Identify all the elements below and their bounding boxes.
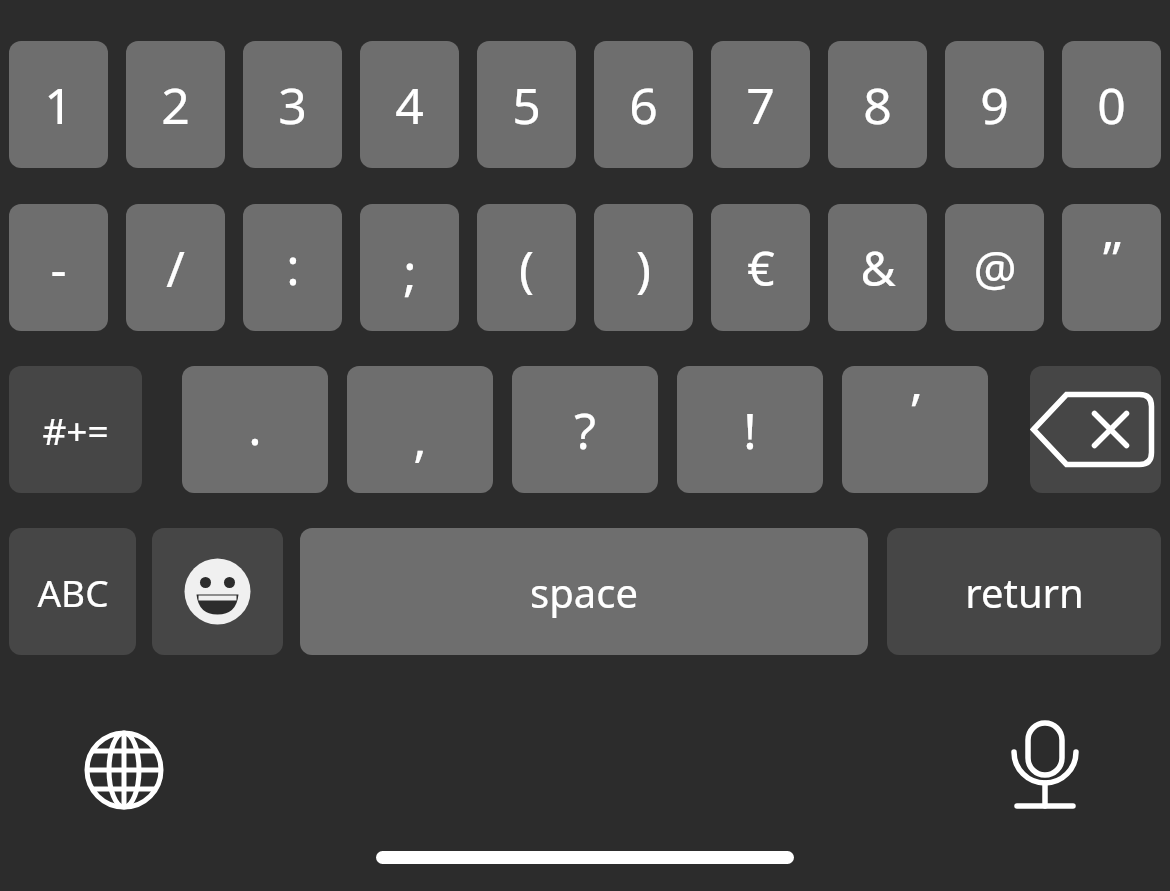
button[interactable]: 3 bbox=[243, 41, 342, 168]
staticText: space bbox=[530, 565, 638, 619]
button[interactable]: 9 bbox=[945, 41, 1044, 168]
button[interactable]: Change keyboard bbox=[74, 720, 174, 820]
button[interactable]: 1 bbox=[9, 41, 108, 168]
button[interactable]: , bbox=[347, 366, 493, 493]
staticText: 2 bbox=[161, 71, 190, 139]
staticText: 1 bbox=[44, 71, 73, 139]
button[interactable]: #+= bbox=[9, 366, 142, 493]
staticText: 9 bbox=[980, 71, 1009, 139]
staticText: 5 bbox=[512, 71, 541, 139]
button[interactable]: ” bbox=[1062, 204, 1161, 331]
button[interactable]: return bbox=[887, 528, 1161, 655]
staticText: / bbox=[166, 234, 185, 302]
staticText: ? bbox=[574, 396, 596, 464]
button[interactable]: 6 bbox=[594, 41, 693, 168]
button[interactable]: : bbox=[243, 204, 342, 331]
staticText: 8 bbox=[863, 71, 892, 139]
button[interactable]: 8 bbox=[828, 41, 927, 168]
staticText: 4 bbox=[395, 71, 424, 139]
button[interactable]: 4 bbox=[360, 41, 459, 168]
staticText: 0 bbox=[1097, 71, 1126, 139]
staticText: ” bbox=[1103, 224, 1121, 292]
staticText: € bbox=[747, 235, 775, 300]
button[interactable]: 0 bbox=[1062, 41, 1161, 168]
button[interactable]: - bbox=[9, 204, 108, 331]
staticText: ’ bbox=[911, 376, 920, 444]
button[interactable]: / bbox=[126, 204, 225, 331]
staticText: ( bbox=[519, 234, 534, 302]
staticText: ) bbox=[636, 234, 651, 302]
button[interactable]: & bbox=[828, 204, 927, 331]
staticText: #+= bbox=[42, 405, 109, 455]
staticText: 3 bbox=[278, 71, 307, 139]
staticText: & bbox=[860, 235, 896, 300]
staticText: 6 bbox=[629, 71, 658, 139]
staticText: ABC bbox=[37, 567, 109, 617]
button[interactable]: . bbox=[182, 366, 328, 493]
button[interactable]: € bbox=[711, 204, 810, 331]
staticText: @ bbox=[973, 235, 1017, 300]
button[interactable]: ? bbox=[512, 366, 658, 493]
button[interactable]: ) bbox=[594, 204, 693, 331]
button[interactable]: @ bbox=[945, 204, 1044, 331]
button[interactable]: Emoji bbox=[152, 528, 283, 655]
staticText: : bbox=[286, 232, 300, 300]
staticText: , bbox=[413, 404, 427, 472]
staticText: ! bbox=[743, 396, 757, 464]
button[interactable]: ! bbox=[677, 366, 823, 493]
button[interactable]: ( bbox=[477, 204, 576, 331]
staticText: . bbox=[248, 392, 262, 460]
staticText: - bbox=[50, 234, 67, 302]
button[interactable]: ; bbox=[360, 204, 459, 331]
button[interactable]: ’ bbox=[842, 366, 988, 493]
button[interactable]: Backspace bbox=[1030, 366, 1161, 493]
button[interactable]: 7 bbox=[711, 41, 810, 168]
staticText: ; bbox=[403, 238, 417, 306]
staticText: return bbox=[965, 565, 1084, 619]
button[interactable]: space bbox=[300, 528, 868, 655]
staticText: 7 bbox=[746, 71, 775, 139]
button[interactable]: 5 bbox=[477, 41, 576, 168]
button[interactable]: ABC bbox=[9, 528, 136, 655]
button[interactable]: Voice input bbox=[995, 718, 1095, 818]
button[interactable]: 2 bbox=[126, 41, 225, 168]
